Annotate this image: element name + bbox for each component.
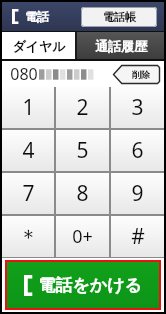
- staticText: 0+: [72, 224, 93, 249]
- staticText: 8: [76, 179, 89, 208]
- staticText: 電話: [25, 9, 49, 24]
- staticText: 7: [22, 179, 35, 208]
- staticText: 5: [76, 136, 89, 165]
- button[interactable]: 0+: [56, 216, 109, 257]
- button[interactable]: 2: [56, 87, 109, 128]
- staticText: 2: [76, 93, 89, 122]
- staticText: 電話をかける: [38, 275, 142, 296]
- button[interactable]: 6: [111, 130, 164, 171]
- staticText: 080: [10, 63, 38, 85]
- staticText: 削除: [132, 69, 150, 80]
- staticText: 通話履歴: [95, 38, 147, 54]
- button[interactable]: 9: [111, 173, 164, 214]
- button[interactable]: 8: [56, 173, 109, 214]
- button[interactable]: 3: [111, 87, 164, 128]
- staticText: 電話帳: [103, 10, 136, 24]
- button[interactable]: 1: [2, 87, 54, 128]
- button[interactable]: #: [111, 216, 164, 257]
- button[interactable]: ＊: [2, 216, 54, 257]
- staticText: 1: [22, 93, 35, 122]
- staticText: 6: [131, 136, 144, 165]
- button[interactable]: 7: [2, 173, 54, 214]
- button[interactable]: 通話履歴: [77, 32, 164, 59]
- staticText: ＊: [18, 224, 39, 250]
- button[interactable]: 4: [2, 130, 54, 171]
- staticText: 3: [131, 93, 144, 122]
- staticText: 9: [131, 179, 144, 208]
- button[interactable]: 5: [56, 130, 109, 171]
- button[interactable]: 電話帳: [81, 7, 157, 27]
- staticText: ダイヤル: [12, 38, 66, 54]
- button[interactable]: ダイヤル: [2, 32, 75, 59]
- staticText: #: [131, 222, 145, 251]
- staticText: 4: [22, 136, 35, 165]
- button[interactable]: 削除: [113, 65, 160, 84]
- button[interactable]: 電話をかける: [7, 262, 159, 308]
